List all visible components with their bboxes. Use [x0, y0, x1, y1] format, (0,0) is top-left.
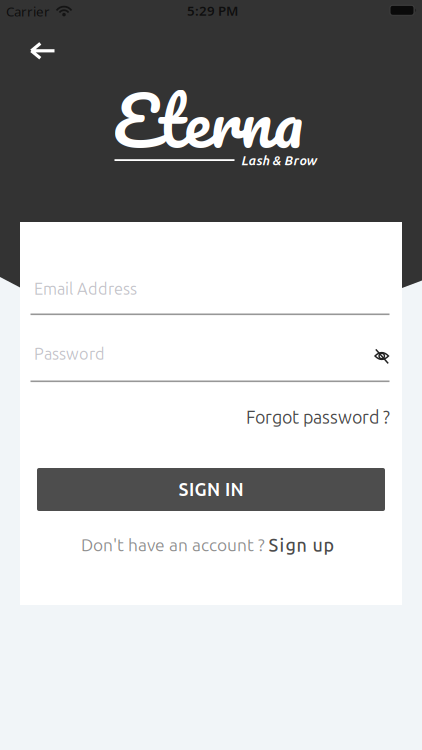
- staticText: Carrier: [6, 2, 50, 20]
- staticText: Sign up: [268, 535, 334, 555]
- staticText: Password: [34, 344, 105, 363]
- staticText: Email Address: [34, 279, 137, 298]
- staticText: Lash & Brow: [241, 153, 317, 168]
- button[interactable]: SIGN IN: [37, 468, 385, 511]
- staticText: Forgot password ?: [246, 407, 390, 427]
- button[interactable]: Sign up: [268, 535, 334, 555]
- button[interactable]: Show password: [372, 346, 392, 366]
- staticText: 5:29 PM: [187, 2, 238, 19]
- staticText: Don't have an account ?: [81, 535, 265, 554]
- button[interactable]: Forgot password ?: [246, 407, 390, 427]
- button[interactable]: Back: [23, 36, 63, 66]
- staticText: Eterna: [113, 62, 303, 178]
- staticText: SIGN IN: [178, 480, 243, 499]
